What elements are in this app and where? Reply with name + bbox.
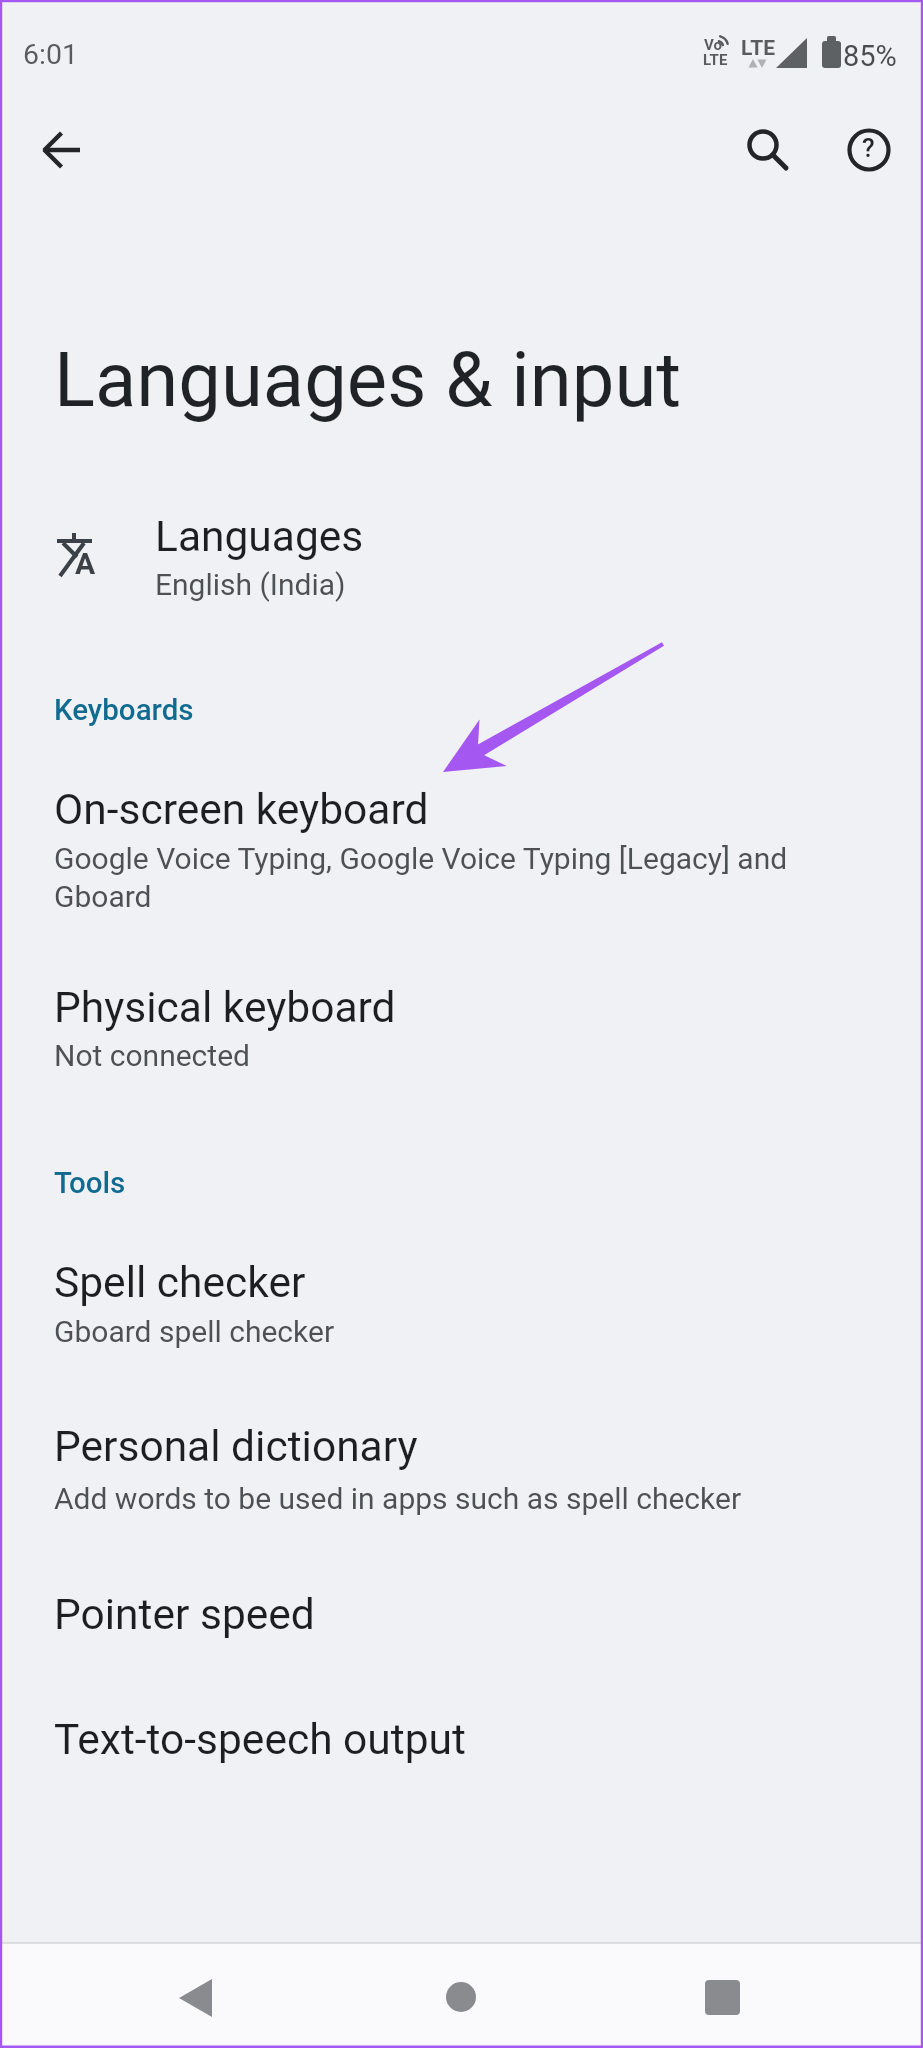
staticText: Text-to-speech output <box>54 1715 466 1765</box>
staticText: Physical keyboard <box>54 983 396 1033</box>
staticText: English (India) <box>155 567 346 602</box>
button[interactable]: Personal dictionary <box>0 1405 923 1535</box>
staticText: Pointer speed <box>54 1590 315 1640</box>
button[interactable]: On-screen keyboard <box>0 765 923 925</box>
staticText: Spell checker <box>54 1258 306 1308</box>
staticText: Not connected <box>54 1038 250 1073</box>
button[interactable]: Text-to-speech output <box>0 1695 923 1795</box>
staticText: Keyboards <box>54 693 194 728</box>
button[interactable]: Spell checker <box>0 1240 923 1370</box>
button[interactable] <box>735 118 791 174</box>
staticText: ? <box>862 133 875 163</box>
staticText: Tools <box>54 1166 126 1201</box>
button[interactable] <box>401 1958 521 2038</box>
staticText: LTE <box>741 36 776 61</box>
button[interactable] <box>841 122 897 178</box>
staticText: Personal dictionary <box>54 1422 418 1472</box>
staticText: A <box>75 546 96 581</box>
staticText: Gboard <box>54 879 152 914</box>
staticText: Google Voice Typing, Google Voice Typing… <box>54 841 788 876</box>
button[interactable] <box>136 1958 256 2038</box>
staticText: LTE <box>703 51 728 69</box>
button[interactable] <box>662 1958 782 2038</box>
button[interactable]: Languages <box>0 490 923 610</box>
staticText: Add words to be used in apps such as spe… <box>54 1481 742 1516</box>
button[interactable] <box>34 122 90 178</box>
staticText: Languages & input <box>54 335 682 424</box>
staticText: 85% <box>843 39 897 73</box>
staticText: On-screen keyboard <box>54 785 429 835</box>
staticText: 6:01 <box>23 38 78 71</box>
button[interactable]: Pointer speed <box>0 1570 923 1670</box>
button[interactable]: Physical keyboard <box>0 965 923 1095</box>
staticText: Gboard spell checker <box>54 1314 335 1349</box>
staticText: Vo <box>704 36 722 54</box>
staticText: Languages <box>155 512 364 562</box>
